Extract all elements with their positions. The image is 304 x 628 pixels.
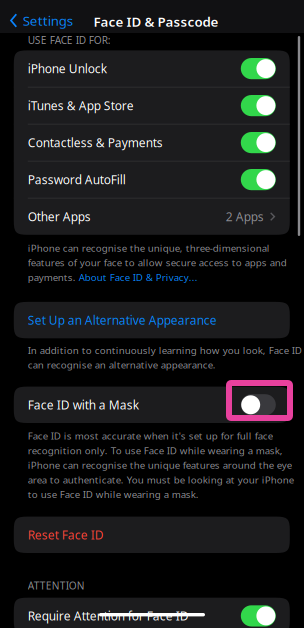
staticText: can recognise an alternative appearance. bbox=[28, 358, 216, 371]
button[interactable]: iTunes & App Store bbox=[14, 87, 290, 124]
button[interactable]: Settings bbox=[0, 4, 79, 37]
staticText: to use Face ID while wearing a mask. bbox=[28, 488, 199, 501]
staticText: Other Apps bbox=[28, 209, 91, 224]
button[interactable]: Contactless & Payments bbox=[14, 124, 290, 161]
staticText: Set Up an Alternative Appearance bbox=[28, 312, 217, 328]
staticText: ATTENTION bbox=[28, 579, 85, 592]
staticText: iTunes & App Store bbox=[28, 98, 134, 113]
staticText: Face ID & Passcode bbox=[93, 13, 218, 30]
staticText: Require Attention for Face ID bbox=[28, 608, 189, 624]
staticText: Settings bbox=[23, 12, 73, 29]
button[interactable]: Set Up an Alternative Appearance bbox=[14, 302, 290, 338]
button[interactable]: Face ID with a Mask bbox=[14, 387, 290, 423]
staticText: iPhone can recognise the unique features… bbox=[28, 458, 292, 471]
staticText: Reset Face ID bbox=[28, 527, 104, 543]
button[interactable]: iPhone Unlock bbox=[14, 50, 290, 87]
button[interactable]: Reset Face ID bbox=[14, 517, 290, 553]
button[interactable]: Other Apps bbox=[14, 198, 290, 235]
staticText: area to authenticate. You must be lookin… bbox=[28, 473, 294, 486]
staticText: Face ID is most accurate when it's set u… bbox=[28, 429, 273, 442]
staticText: iPhone Unlock bbox=[28, 61, 107, 76]
staticText: USE FACE ID FOR: bbox=[28, 33, 111, 47]
staticText: Face ID with a Mask bbox=[28, 397, 139, 413]
staticText: payments. bbox=[28, 271, 79, 283]
staticText: In addition to continuously learning how… bbox=[28, 344, 302, 357]
staticText: features of your face to allow secure ac… bbox=[28, 256, 287, 269]
staticText: Password AutoFill bbox=[28, 172, 126, 187]
staticText: iPhone can recognise the unique, three-d… bbox=[28, 241, 270, 254]
staticText: Contactless & Payments bbox=[28, 135, 163, 150]
staticText: recognition only. To use Face ID while w… bbox=[28, 444, 283, 457]
button[interactable]: Require Attention for Face ID bbox=[14, 598, 290, 628]
button[interactable]: Password AutoFill bbox=[14, 161, 290, 198]
staticText: About Face ID & Privacy... bbox=[79, 271, 198, 283]
staticText: 2 Apps bbox=[226, 209, 264, 224]
